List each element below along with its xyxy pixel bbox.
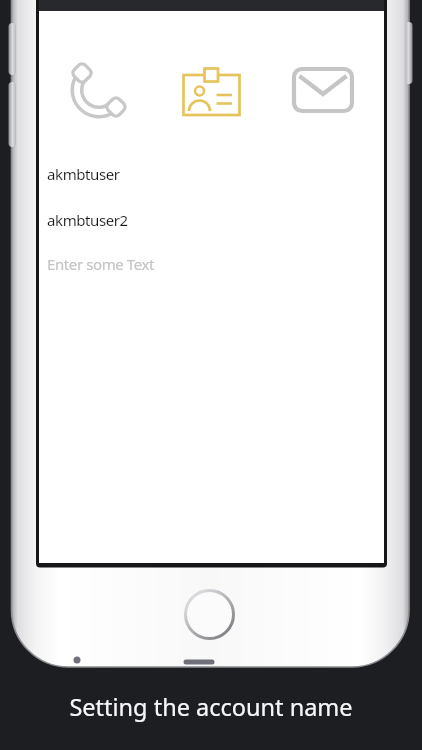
button[interactable] [291, 60, 355, 122]
button[interactable]: akmbtuser [47, 164, 120, 184]
staticText: Setting the account name [69, 691, 353, 723]
button[interactable] [180, 60, 244, 122]
button[interactable]: Enter some Text [47, 254, 155, 274]
button[interactable]: akmbtuser2 [47, 210, 128, 230]
button[interactable] [66, 60, 130, 122]
